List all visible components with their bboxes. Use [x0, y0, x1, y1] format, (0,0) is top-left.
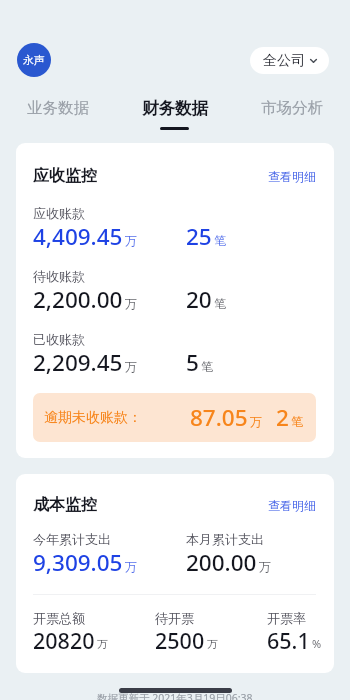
staticText: 20 — [186, 284, 212, 315]
staticText: 笔 — [214, 296, 226, 311]
button[interactable]: 市场分析 — [233, 98, 350, 126]
staticText: 笔 — [291, 414, 303, 429]
staticText: 全公司 — [263, 52, 305, 70]
staticText: % — [312, 636, 316, 651]
staticText: 2,209.45 — [33, 347, 123, 378]
staticText: 87.05 — [190, 402, 248, 433]
staticText: 万 — [125, 359, 137, 374]
staticText: 笔 — [201, 359, 213, 374]
button[interactable]: 业务数据 — [0, 98, 116, 126]
staticText: 今年累计支出 — [33, 531, 111, 547]
button[interactable]: 全公司 — [250, 47, 329, 74]
staticText: 业务数据 — [27, 98, 89, 118]
staticText: 数据更新于 2021年3月19日06:38 — [97, 691, 253, 700]
staticText: 万 — [207, 637, 218, 651]
staticText: 逾期未收账款： — [44, 409, 142, 427]
staticText: 万 — [125, 233, 137, 248]
button[interactable]: 查看明细 — [268, 169, 316, 184]
staticText: 市场分析 — [261, 98, 323, 118]
staticText: 200.00 — [186, 547, 257, 578]
staticText: 本月累计支出 — [186, 531, 264, 547]
button[interactable]: 财务数据 — [116, 98, 233, 130]
staticText: 万 — [125, 296, 137, 311]
staticText: 查看明细 — [268, 169, 316, 184]
staticText: 万 — [259, 559, 271, 574]
staticText: 应收监控 — [33, 166, 97, 186]
staticText: 成本监控 — [33, 495, 97, 515]
button[interactable]: 逾期未收账款： — [33, 393, 316, 442]
staticText: 5 — [186, 347, 199, 378]
staticText: 2 — [276, 402, 289, 433]
staticText: 财务数据 — [142, 98, 208, 119]
staticText: 9,309.05 — [33, 547, 123, 578]
staticText: 永声 — [23, 53, 45, 67]
staticText: 65.1 — [267, 626, 310, 655]
staticText: 20820 — [33, 626, 95, 655]
button[interactable]: 查看明细 — [268, 498, 316, 513]
staticText: 开票率 — [267, 610, 306, 626]
staticText: 万 — [250, 414, 262, 429]
staticText: 待收账款 — [33, 268, 85, 284]
staticText: 应收账款 — [33, 205, 85, 221]
staticText: 开票总额 — [33, 610, 85, 626]
staticText: 2,200.00 — [33, 284, 123, 315]
staticText: 2500 — [155, 626, 205, 655]
staticText: 笔 — [214, 233, 226, 248]
staticText: 4,409.45 — [33, 221, 123, 252]
staticText: 待开票 — [155, 610, 194, 626]
staticText: 25 — [186, 221, 212, 252]
staticText: 万 — [125, 559, 137, 574]
staticText: 已收账款 — [33, 331, 85, 347]
staticText: 查看明细 — [268, 498, 316, 513]
button[interactable]: Company logo — [17, 43, 51, 77]
staticText: 万 — [97, 637, 108, 651]
